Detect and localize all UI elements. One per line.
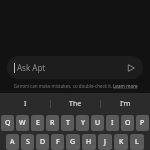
button[interactable]: L — [130, 134, 144, 150]
staticText: E — [36, 118, 40, 128]
button[interactable]: Ask Apt — [7, 56, 143, 79]
staticText: P — [140, 118, 145, 128]
staticText: O — [125, 118, 131, 128]
button[interactable]: G — [66, 134, 80, 150]
button[interactable]: T — [61, 115, 74, 131]
staticText: S — [26, 137, 30, 147]
button[interactable]: F — [51, 134, 64, 150]
staticText: H — [86, 137, 92, 147]
staticText: J — [104, 137, 106, 147]
button[interactable]: E — [31, 115, 44, 131]
staticText: Q — [5, 118, 11, 128]
button[interactable]: Send — [124, 61, 138, 75]
staticText: I — [24, 99, 27, 109]
button[interactable]: I — [0, 93, 50, 114]
staticText: W — [19, 118, 26, 128]
staticText: F — [56, 137, 60, 147]
button[interactable]: Y — [76, 115, 89, 131]
staticText: Gemini can make mistakes, so double-chec… — [13, 83, 113, 89]
staticText: T — [66, 118, 70, 128]
staticText: A — [10, 137, 15, 147]
button[interactable]: U — [91, 115, 104, 131]
staticText: I — [111, 118, 114, 128]
button[interactable]: Q — [1, 115, 14, 131]
staticText: G — [70, 137, 76, 147]
staticText: Y — [81, 118, 85, 128]
button[interactable]: O — [121, 115, 134, 131]
staticText: K — [119, 137, 124, 147]
staticText: I'm — [120, 99, 131, 109]
staticText: D — [40, 137, 46, 147]
button[interactable]: S — [21, 134, 34, 150]
button[interactable]: J — [98, 134, 112, 150]
button[interactable]: K — [114, 134, 128, 150]
staticText: R — [50, 118, 55, 128]
button[interactable]: I — [106, 115, 119, 131]
button[interactable]: D — [36, 134, 49, 150]
staticText: L — [135, 137, 139, 147]
staticText: U — [95, 118, 101, 128]
button[interactable]: H — [82, 134, 96, 150]
button[interactable]: Learn more — [113, 83, 138, 89]
button[interactable]: R — [46, 115, 59, 131]
staticText: The — [69, 99, 82, 109]
button[interactable]: A — [6, 134, 19, 150]
button[interactable]: The — [51, 93, 100, 114]
staticText: Ask Apt — [17, 62, 46, 73]
button[interactable]: P — [136, 115, 149, 131]
button[interactable]: I'm — [101, 93, 150, 114]
button[interactable]: W — [16, 115, 29, 131]
